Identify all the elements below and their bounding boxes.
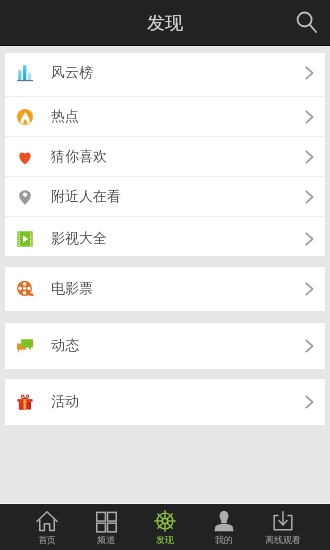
- button[interactable]: 我的: [194, 503, 253, 550]
- staticText: 发现: [156, 534, 174, 545]
- button[interactable]: 离线观看: [253, 503, 312, 550]
- staticText: 电影票: [51, 280, 93, 298]
- staticText: 风云榜: [51, 64, 93, 82]
- button[interactable]: 频道: [76, 503, 135, 550]
- staticText: 我的: [215, 534, 233, 545]
- button[interactable]: 活动: [5, 379, 325, 425]
- button[interactable]: Search: [284, 0, 330, 46]
- button[interactable]: 动态: [5, 323, 325, 369]
- button[interactable]: 猜你喜欢: [5, 137, 325, 176]
- button[interactable]: 发现: [135, 503, 194, 550]
- staticText: 影视大全: [51, 230, 107, 248]
- staticText: 热点: [51, 108, 79, 126]
- staticText: 附近人在看: [51, 188, 121, 206]
- button[interactable]: 风云榜: [5, 53, 325, 96]
- staticText: 频道: [97, 534, 115, 545]
- staticText: 动态: [51, 337, 79, 355]
- staticText: 发现: [147, 12, 183, 35]
- button[interactable]: 影视大全: [5, 217, 325, 256]
- button[interactable]: 电影票: [5, 267, 325, 311]
- staticText: 离线观看: [265, 534, 301, 545]
- staticText: 首页: [38, 534, 56, 545]
- button[interactable]: 热点: [5, 97, 325, 136]
- button[interactable]: 首页: [18, 503, 76, 550]
- staticText: 猜你喜欢: [51, 148, 107, 166]
- staticText: 活动: [51, 393, 79, 411]
- button[interactable]: 附近人在看: [5, 177, 325, 216]
